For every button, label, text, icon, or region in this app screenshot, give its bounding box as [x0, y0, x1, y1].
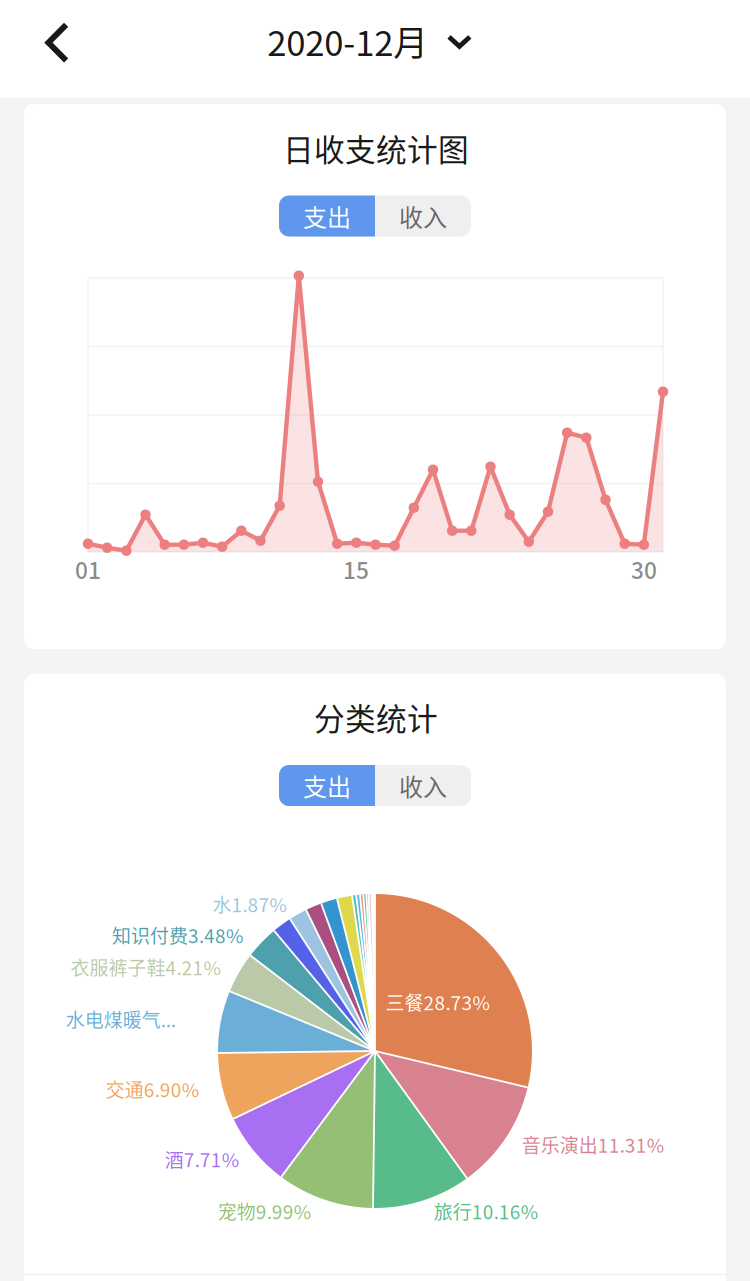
button[interactable]: 收入 [375, 765, 471, 806]
staticText: 日收支统计图 [283, 126, 469, 170]
button[interactable]: 2020-12月 [255, 12, 475, 72]
staticText: 2020-12月 [267, 16, 428, 66]
staticText: 水1.87% [212, 890, 286, 918]
button[interactable]: 支出 [279, 765, 375, 806]
staticText: 旅行10.16% [434, 1197, 538, 1225]
staticText: 收入 [399, 199, 447, 233]
staticText: 支出 [303, 768, 351, 803]
button[interactable]: 收入 [375, 195, 471, 236]
staticText: 三餐28.73% [386, 988, 490, 1016]
staticText: 支出 [303, 199, 351, 233]
staticText: 水电煤暖气... [66, 1005, 176, 1033]
staticText: 音乐演出11.31% [522, 1131, 664, 1158]
staticText: 收入 [399, 768, 447, 803]
staticText: 知识付费3.48% [112, 921, 243, 949]
staticText: 分类统计 [314, 695, 438, 739]
staticText: 01 [75, 553, 101, 585]
button[interactable]: 支出 [279, 195, 375, 236]
staticText: 酒7.71% [165, 1145, 239, 1173]
staticText: 15 [343, 553, 369, 585]
staticText: 衣服裤子鞋4.21% [71, 953, 221, 981]
staticText: 30 [631, 553, 657, 585]
staticText: 交通6.90% [106, 1075, 199, 1103]
button[interactable]: Back [0, 0, 110, 98]
staticText: 宠物9.99% [218, 1197, 311, 1225]
